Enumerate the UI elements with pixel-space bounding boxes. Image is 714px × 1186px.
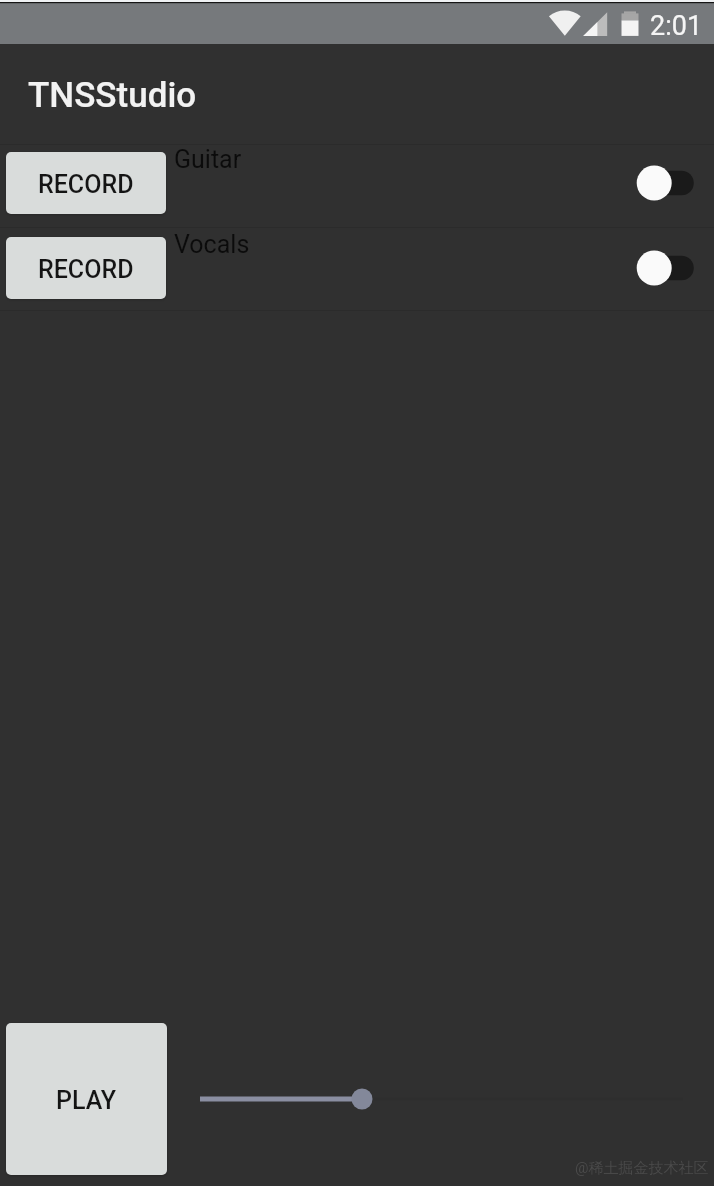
- staticText: Guitar: [174, 145, 242, 174]
- staticText: TNSStudio: [28, 75, 197, 116]
- button[interactable]: Toggle Vocals: [630, 237, 708, 299]
- staticText: @稀土掘金技术社区: [575, 1159, 709, 1178]
- staticText: 2:01: [650, 10, 703, 42]
- staticText: RECORD: [38, 255, 134, 284]
- staticText: RECORD: [38, 170, 134, 199]
- button[interactable]: Toggle Guitar: [630, 152, 708, 214]
- staticText: PLAY: [56, 1086, 117, 1115]
- button[interactable]: RECORD: [6, 152, 166, 214]
- button[interactable]: RECORD: [6, 237, 166, 299]
- staticText: Vocals: [174, 230, 250, 259]
- button[interactable]: PLAY: [6, 1023, 167, 1175]
- button[interactable]: Seek position: [180, 1076, 700, 1122]
